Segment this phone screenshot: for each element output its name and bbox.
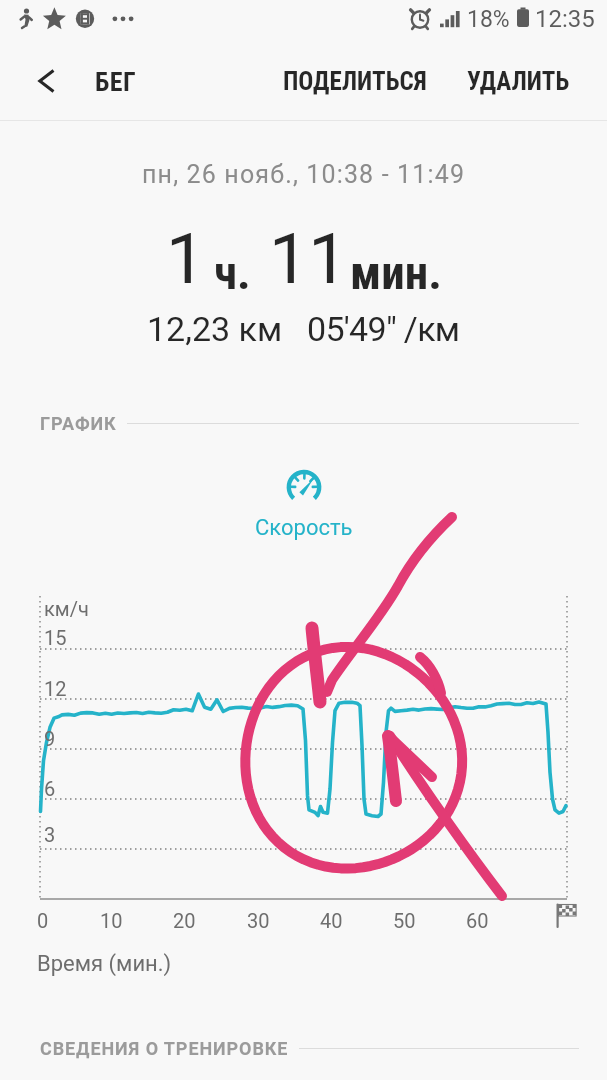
staticText: 05'49" /км xyxy=(307,309,460,349)
staticText: пн, 26 нояб., 10:38 - 11:49 xyxy=(142,160,466,189)
staticText: 3 xyxy=(44,823,56,846)
staticText: СВЕДЕНИЯ О ТРЕНИРОВКЕ xyxy=(40,1038,289,1059)
staticText: 10 xyxy=(100,909,123,932)
button[interactable]: УДАЛИТЬ xyxy=(453,57,584,106)
staticText: 12 xyxy=(44,677,67,700)
staticText: мин. xyxy=(350,245,442,300)
staticText: 9 xyxy=(44,727,56,750)
staticText: Время (мин.) xyxy=(37,951,172,977)
staticText: 1 xyxy=(166,218,206,300)
staticText: 30 xyxy=(247,909,270,932)
staticText: 50 xyxy=(393,909,416,932)
staticText: км/ч xyxy=(44,597,89,620)
staticText: 11 xyxy=(269,218,348,300)
staticText: ГРАФИК xyxy=(40,413,117,434)
staticText: УДАЛИТЬ xyxy=(467,67,570,96)
staticText: 0 xyxy=(37,909,49,932)
staticText: 40 xyxy=(320,909,343,932)
staticText: 18% xyxy=(467,6,510,33)
staticText: ч. xyxy=(214,245,251,300)
staticText: 15 xyxy=(44,626,67,649)
button[interactable]: ПОДЕЛИТЬСЯ xyxy=(269,57,441,106)
staticText: 60 xyxy=(466,909,489,932)
staticText: 12:35 xyxy=(535,5,595,33)
staticText: 12,23 км xyxy=(147,309,283,349)
staticText: 20 xyxy=(173,909,196,932)
staticText: Скорость xyxy=(255,515,353,541)
staticText: ПОДЕЛИТЬСЯ xyxy=(283,67,427,96)
staticText: БЕГ xyxy=(95,67,137,97)
button[interactable]: Back xyxy=(23,58,69,104)
staticText: 6 xyxy=(44,777,56,800)
